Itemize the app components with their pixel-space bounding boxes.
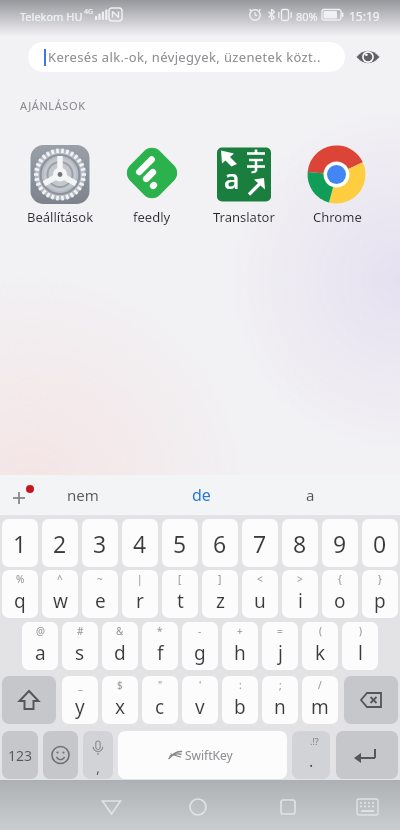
staticText: k [315, 640, 326, 666]
button[interactable]: 4 [122, 519, 158, 567]
staticText: z [216, 588, 225, 614]
button[interactable]: 5 [162, 519, 198, 567]
button[interactable]: * [142, 622, 178, 670]
button[interactable]: | [122, 570, 158, 618]
staticText: ] [218, 572, 222, 586]
staticText: f [157, 640, 164, 666]
button[interactable] [2, 676, 56, 724]
staticText: 8 [293, 528, 307, 559]
button[interactable] [86, 790, 136, 820]
staticText: i [298, 588, 303, 614]
staticText: . [309, 750, 314, 772]
staticText: 9 [333, 528, 347, 559]
staticText: d [114, 640, 126, 666]
staticText: 15:19 [349, 8, 380, 24]
button[interactable]: ^ [42, 570, 78, 618]
button[interactable] [304, 143, 370, 229]
staticText: 7 [253, 528, 267, 559]
staticText: ) [359, 624, 362, 638]
button[interactable]: 1 [2, 519, 38, 567]
button[interactable]: 0 [362, 519, 398, 567]
staticText: s [75, 640, 85, 666]
staticText: h [234, 640, 246, 666]
staticText: / [318, 678, 322, 692]
button[interactable]: 123 [2, 731, 38, 779]
button[interactable]: { [322, 570, 358, 618]
staticText: Beállítások [27, 208, 94, 226]
staticText: a [35, 640, 46, 666]
button[interactable]: .!? [292, 731, 330, 779]
staticText: g [194, 640, 206, 666]
button[interactable]: : [222, 676, 258, 724]
staticText: u [254, 588, 266, 614]
button[interactable]: % [2, 570, 38, 618]
button[interactable]: [ [162, 570, 198, 618]
staticText: o [334, 588, 346, 614]
staticText: l [358, 640, 363, 666]
button[interactable] [211, 143, 277, 229]
button[interactable]: ( [302, 622, 338, 670]
staticText: ( [319, 624, 322, 638]
button[interactable]: Keresés alk.-ok, névjegyek, üzenetek köz… [28, 42, 345, 72]
staticText: 2 [53, 528, 67, 559]
staticText: x [115, 694, 126, 720]
button[interactable]: ~ [82, 570, 118, 618]
staticText: - [198, 624, 202, 638]
button[interactable]: ; [262, 676, 298, 724]
button[interactable]: de [140, 475, 262, 515]
button[interactable] [336, 731, 398, 779]
button[interactable]: = [262, 622, 298, 670]
button[interactable]: & [102, 622, 138, 670]
button[interactable] [344, 676, 398, 724]
button[interactable] [263, 790, 313, 820]
button[interactable]: 8 [282, 519, 318, 567]
button[interactable] [43, 731, 78, 779]
staticText: _ [78, 678, 83, 692]
staticText: AJÁNLÁSOK [20, 98, 86, 113]
staticText: 4G [84, 7, 94, 17]
button[interactable]: @ [22, 622, 58, 670]
button[interactable]: } [362, 570, 398, 618]
button[interactable]: , [83, 731, 113, 779]
button[interactable]: < [242, 570, 278, 618]
button[interactable]: 6 [202, 519, 238, 567]
button[interactable]: 3 [82, 519, 118, 567]
button[interactable]: $ [102, 676, 138, 724]
button[interactable]: # [62, 622, 98, 670]
staticText: } [378, 572, 382, 586]
button[interactable] [27, 143, 93, 229]
button[interactable]: SwiftKey [118, 731, 287, 779]
button[interactable]: > [282, 570, 318, 618]
button[interactable]: ) [342, 622, 378, 670]
button[interactable] [119, 143, 185, 229]
button[interactable]: 2 [42, 519, 78, 567]
staticText: $ [117, 678, 123, 692]
button[interactable] [173, 790, 223, 820]
button[interactable]: nem [36, 475, 130, 515]
staticText: * [157, 624, 163, 638]
button[interactable]: " [142, 676, 178, 724]
button[interactable] [354, 44, 382, 70]
button[interactable]: ] [202, 570, 238, 618]
staticText: j [278, 640, 283, 666]
staticText: 123 [8, 746, 33, 765]
button[interactable] [345, 790, 390, 820]
staticText: % [16, 572, 25, 586]
staticText: 0 [373, 528, 387, 559]
button[interactable]: / [302, 676, 338, 724]
button[interactable]: 9 [322, 519, 358, 567]
button[interactable]: a [262, 475, 358, 515]
staticText: p [374, 588, 386, 614]
staticText: | [137, 572, 143, 586]
staticText: Translator [213, 208, 275, 226]
staticText: [ [178, 572, 182, 586]
button[interactable]: ' [182, 676, 218, 724]
button[interactable]: + [222, 622, 258, 670]
button[interactable]: _ [62, 676, 98, 724]
staticText: de [192, 484, 211, 506]
button[interactable]: 7 [242, 519, 278, 567]
staticText: # [77, 624, 84, 638]
staticText: w [53, 588, 68, 614]
button[interactable] [0, 475, 42, 515]
button[interactable]: - [182, 622, 218, 670]
